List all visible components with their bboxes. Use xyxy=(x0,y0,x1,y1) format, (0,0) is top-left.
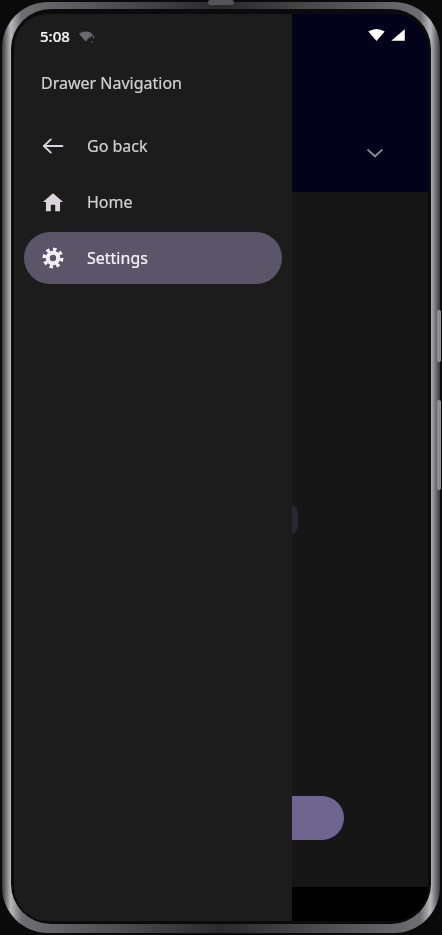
button[interactable]: Settings xyxy=(24,232,282,284)
staticText: 5:08 xyxy=(40,26,70,46)
button[interactable] xyxy=(124,796,344,840)
button[interactable]: Home xyxy=(24,176,282,228)
staticText: Home xyxy=(87,191,133,213)
button[interactable]: Expand xyxy=(362,140,388,166)
staticText: Go back xyxy=(87,135,148,157)
button[interactable]: Go back xyxy=(24,120,282,172)
staticText: Settings xyxy=(87,247,148,269)
staticText: Drawer Navigation xyxy=(41,72,182,94)
